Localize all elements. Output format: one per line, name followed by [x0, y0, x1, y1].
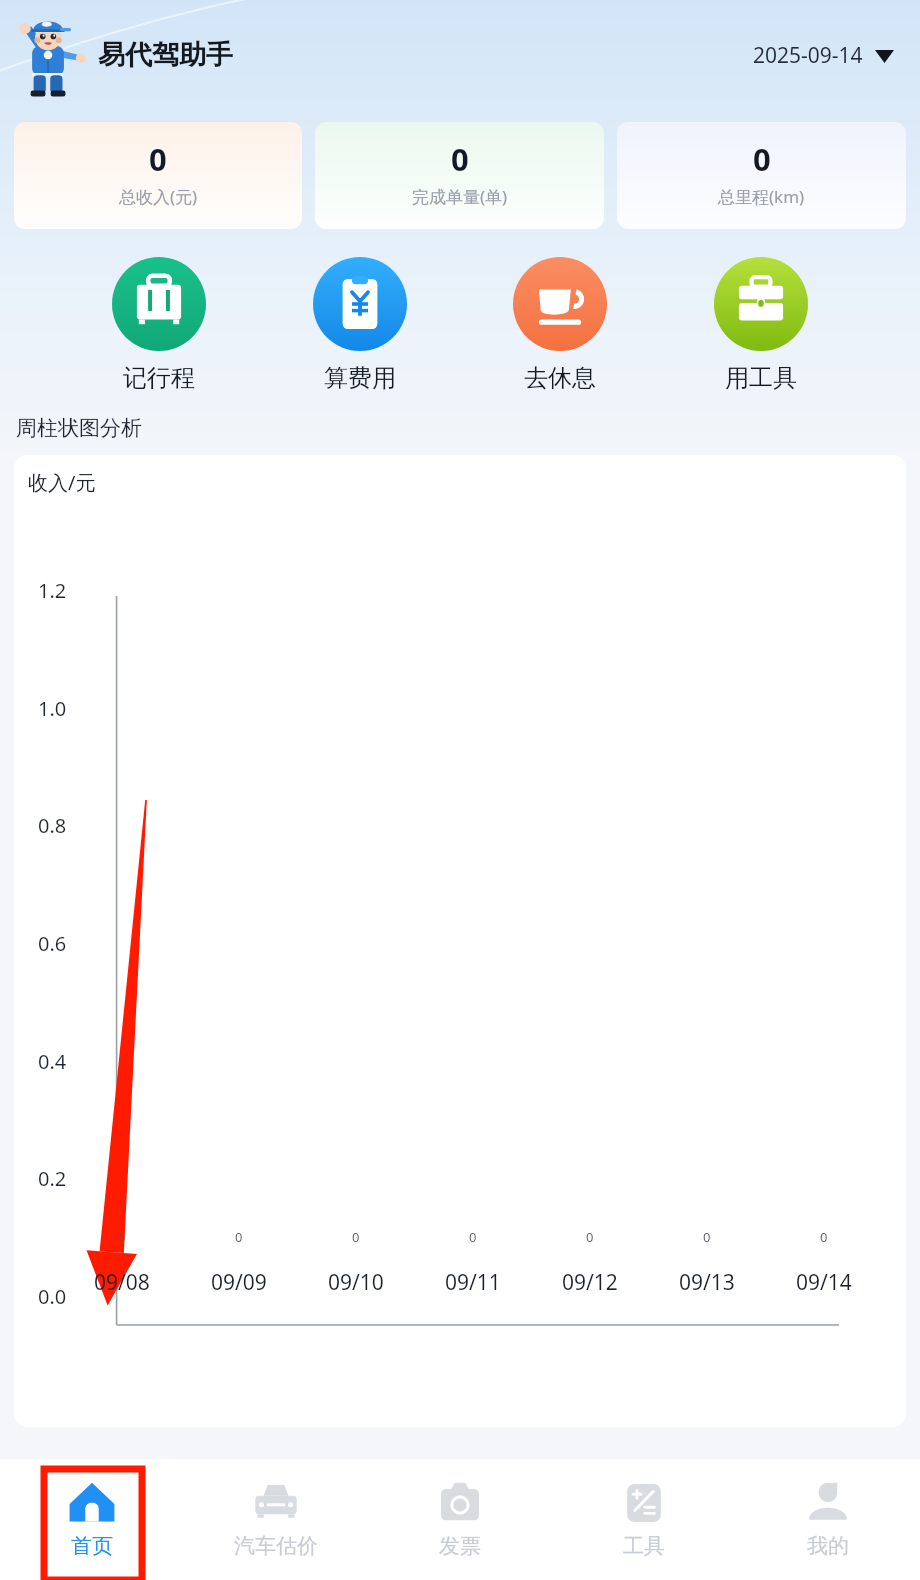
staticText: 0 [235, 1228, 243, 1246]
staticText: 0 [352, 1228, 360, 1246]
staticText: 0 [149, 138, 167, 180]
button[interactable]: 工具 [552, 1459, 736, 1580]
staticText: 0 [451, 138, 469, 180]
staticText: 收入/元 [28, 469, 96, 496]
button[interactable]: 0 [617, 122, 906, 229]
staticText: 0.6 [38, 930, 67, 957]
staticText: 2025-09-14 [753, 41, 863, 70]
staticText: 09/10 [328, 1268, 384, 1297]
button[interactable]: 首页 [0, 1459, 184, 1580]
staticText: 易代驾助手 [98, 38, 233, 72]
staticText: 09/08 [94, 1268, 150, 1297]
button[interactable]: 0 [14, 122, 302, 229]
staticText: 记行程 [123, 363, 195, 393]
staticText: 工具 [623, 1533, 665, 1559]
staticText: 周柱状图分析 [16, 415, 142, 441]
staticText: 0.4 [38, 1048, 67, 1075]
staticText: 09/11 [445, 1268, 501, 1297]
staticText: 09/14 [796, 1268, 852, 1297]
staticText: 0 [469, 1228, 477, 1246]
staticText: 用工具 [725, 363, 797, 393]
staticText: 总收入(元) [119, 185, 198, 208]
staticText: 完成单量(单) [412, 185, 508, 208]
staticText: 总里程(km) [718, 185, 805, 208]
staticText: 0 [703, 1228, 711, 1246]
staticText: 0.0 [38, 1283, 67, 1310]
button[interactable]: 去休息 [507, 257, 613, 393]
staticText: 09/12 [562, 1268, 618, 1297]
staticText: 1.0 [38, 695, 67, 722]
staticText: 首页 [71, 1533, 113, 1559]
staticText: 我的 [807, 1533, 849, 1559]
staticText: 0 [753, 138, 771, 180]
staticText: 09/09 [211, 1268, 267, 1297]
staticText: 去休息 [524, 363, 596, 393]
staticText: 0.8 [38, 812, 67, 839]
staticText: 汽车估价 [234, 1533, 318, 1559]
staticText: 1.2 [38, 577, 67, 604]
staticText: 0 [118, 1228, 126, 1246]
button[interactable]: 算费用 [307, 257, 413, 393]
staticText: 发票 [439, 1533, 481, 1559]
staticText: 09/13 [679, 1268, 735, 1297]
button[interactable]: 用工具 [708, 257, 814, 393]
staticText: 0 [820, 1228, 828, 1246]
button[interactable]: 汽车估价 [184, 1459, 368, 1580]
staticText: 0 [586, 1228, 594, 1246]
staticText: 0.2 [38, 1165, 67, 1192]
button[interactable]: 我的 [736, 1459, 920, 1580]
button[interactable]: 0 [315, 122, 604, 229]
staticText: 算费用 [324, 363, 396, 393]
button[interactable]: 发票 [368, 1459, 552, 1580]
button[interactable]: 记行程 [106, 257, 212, 393]
button[interactable]: 2025-09-14 [747, 35, 900, 76]
